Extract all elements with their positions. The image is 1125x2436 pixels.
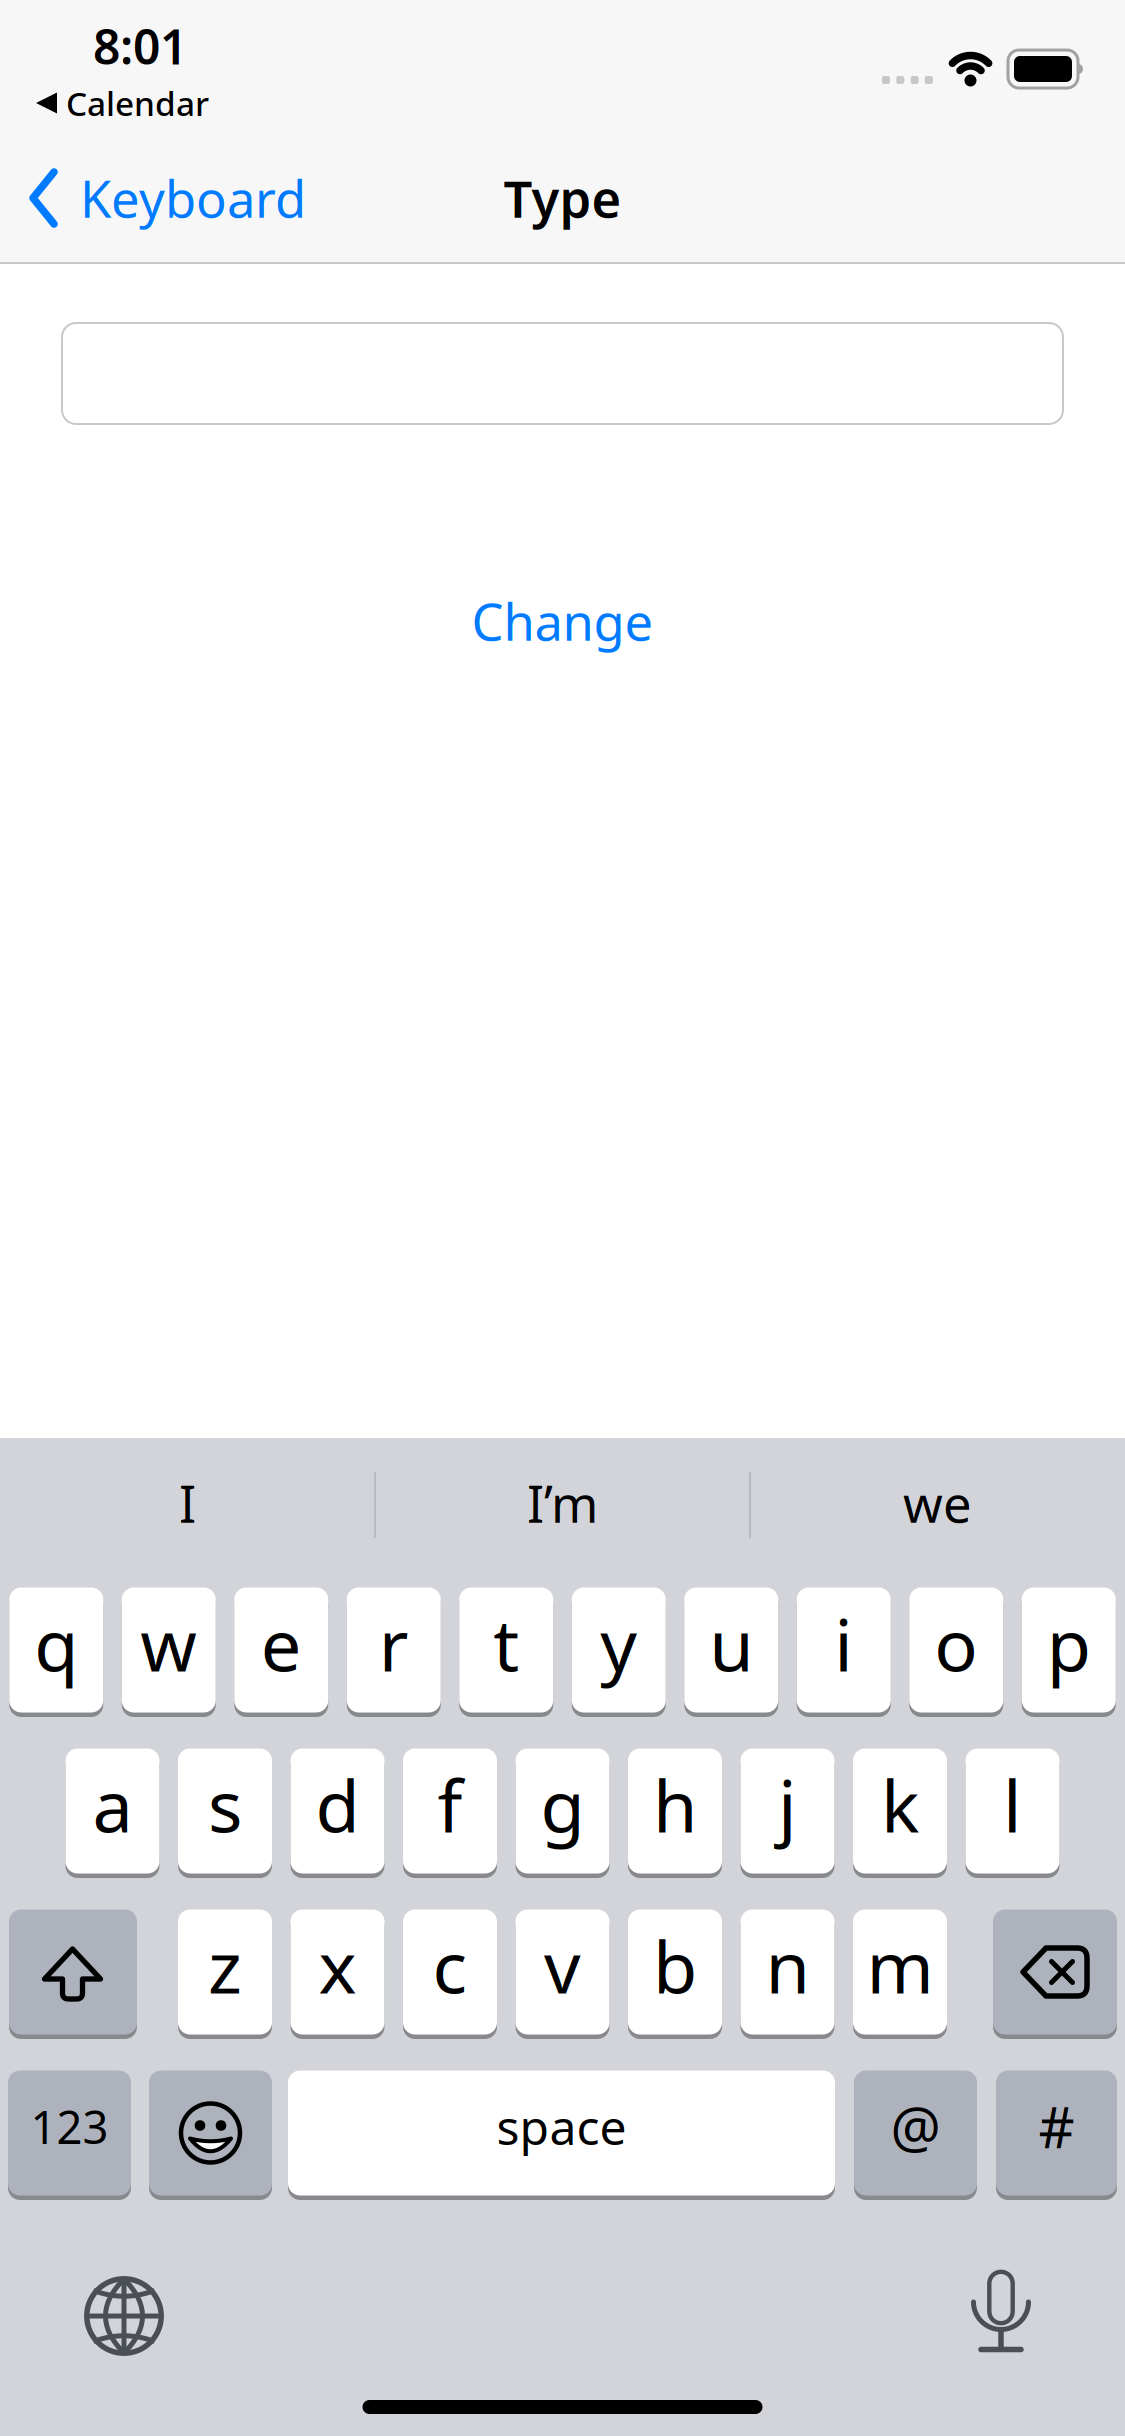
button[interactable]: I (2, 1443, 372, 1563)
button[interactable]: b (628, 1909, 722, 2037)
button[interactable]: s (178, 1748, 272, 1876)
staticText: @ (890, 2089, 940, 2164)
button[interactable]: w (122, 1587, 216, 1715)
staticText: we (903, 1469, 972, 1537)
button[interactable]: I’m (377, 1443, 747, 1563)
button[interactable]: Next keyboard (84, 2276, 164, 2356)
staticText: Calendar (66, 81, 209, 125)
staticText: 8:01 (93, 14, 187, 78)
button[interactable]: i (797, 1587, 891, 1715)
staticText: g (540, 1757, 584, 1852)
staticText: space (496, 2095, 626, 2158)
button[interactable]: v (515, 1909, 609, 2037)
staticText: c (432, 1918, 467, 2013)
button[interactable]: @ (854, 2070, 977, 2198)
button[interactable]: k (853, 1748, 947, 1876)
button[interactable]: Emoji (149, 2070, 272, 2198)
staticText: x (318, 1918, 356, 2013)
button[interactable]: # (996, 2070, 1117, 2198)
button[interactable]: x (290, 1909, 384, 2037)
staticText: h (653, 1757, 697, 1852)
button[interactable]: o (909, 1587, 1003, 1715)
button[interactable]: y (572, 1587, 666, 1715)
button[interactable]: t (459, 1587, 553, 1715)
button[interactable]: f (403, 1748, 497, 1876)
button[interactable]: space (288, 2070, 835, 2198)
button[interactable]: Dictation (973, 2270, 1029, 2354)
staticText: j (778, 1757, 797, 1852)
button[interactable]: p (1022, 1587, 1116, 1715)
staticText: Type (503, 164, 621, 232)
button[interactable]: Back to Calendar (35, 81, 335, 125)
button[interactable]: Change (471, 587, 653, 655)
staticText: t (493, 1596, 519, 1691)
button[interactable]: c (403, 1909, 497, 2037)
button[interactable]: Shift (9, 1909, 137, 2037)
button[interactable]: g (515, 1748, 609, 1876)
staticText: I (179, 1469, 196, 1537)
button[interactable]: Text field (62, 323, 1063, 424)
staticText: Change (471, 587, 653, 655)
button[interactable]: r (347, 1587, 441, 1715)
staticText: m (866, 1918, 933, 2013)
staticText: a (92, 1757, 132, 1852)
staticText: r (379, 1596, 409, 1691)
button[interactable]: e (234, 1587, 328, 1715)
staticText: f (437, 1757, 462, 1852)
staticText: z (208, 1918, 242, 2013)
button[interactable]: d (290, 1748, 384, 1876)
button[interactable]: Delete (993, 1909, 1117, 2037)
staticText: u (709, 1596, 753, 1691)
staticText: # (1038, 2089, 1074, 2164)
staticText: I’m (527, 1469, 598, 1537)
staticText: 123 (30, 2096, 108, 2157)
button[interactable]: l (965, 1748, 1059, 1876)
button[interactable]: a (65, 1748, 159, 1876)
staticText: i (834, 1596, 853, 1691)
button[interactable]: Back (30, 164, 490, 232)
staticText: w (140, 1596, 197, 1691)
staticText: q (34, 1596, 78, 1691)
staticText: p (1047, 1596, 1091, 1691)
button[interactable]: n (740, 1909, 834, 2037)
staticText: k (881, 1757, 919, 1852)
button[interactable]: h (628, 1748, 722, 1876)
staticText: y (600, 1596, 637, 1691)
button[interactable]: q (9, 1587, 103, 1715)
staticText: n (765, 1918, 809, 2013)
staticText: v (544, 1918, 581, 2013)
staticText: Keyboard (80, 164, 306, 232)
staticText: b (653, 1918, 697, 2013)
staticText: d (315, 1757, 359, 1852)
button[interactable]: j (740, 1748, 834, 1876)
button[interactable]: u (684, 1587, 778, 1715)
button[interactable]: m (853, 1909, 947, 2037)
button[interactable]: we (752, 1443, 1122, 1563)
staticText: l (1003, 1757, 1022, 1852)
staticText: s (208, 1757, 242, 1852)
button[interactable]: z (178, 1909, 272, 2037)
staticText: e (261, 1596, 302, 1691)
staticText: o (934, 1596, 978, 1691)
button[interactable]: 123 (8, 2070, 131, 2198)
